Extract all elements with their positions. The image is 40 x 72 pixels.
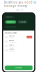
staticText: Recent activity bbox=[5, 32, 17, 34]
button[interactable]: Salary bbox=[3, 44, 34, 48]
staticText: Yesterday bbox=[9, 42, 17, 43]
staticText: Updated just now bbox=[5, 26, 16, 28]
staticText: Continue bbox=[15, 67, 22, 69]
staticText: -48.20 bbox=[27, 36, 31, 38]
staticText: Total balance bbox=[5, 16, 14, 18]
staticText: Monday bbox=[9, 46, 15, 48]
staticText: Add money bbox=[7, 21, 15, 23]
button[interactable]: Coffee bbox=[3, 48, 34, 52]
staticText: Built for speed bbox=[15, 9, 24, 11]
staticText: Everything you need to manage money bbox=[3, 1, 36, 8]
staticText: Electric bbox=[9, 40, 14, 41]
button[interactable]: Add money bbox=[5, 20, 16, 24]
button[interactable]: Market bbox=[3, 35, 34, 39]
staticText: Transfer bbox=[19, 21, 26, 23]
button[interactable]: Electric bbox=[3, 39, 34, 44]
staticText: Sunday bbox=[9, 50, 15, 52]
staticText: Coffee bbox=[9, 48, 14, 50]
button[interactable]: Transfer bbox=[18, 20, 28, 24]
button[interactable]: Continue bbox=[3, 65, 34, 71]
staticText: Market bbox=[9, 35, 14, 37]
staticText: Salary bbox=[9, 44, 14, 46]
